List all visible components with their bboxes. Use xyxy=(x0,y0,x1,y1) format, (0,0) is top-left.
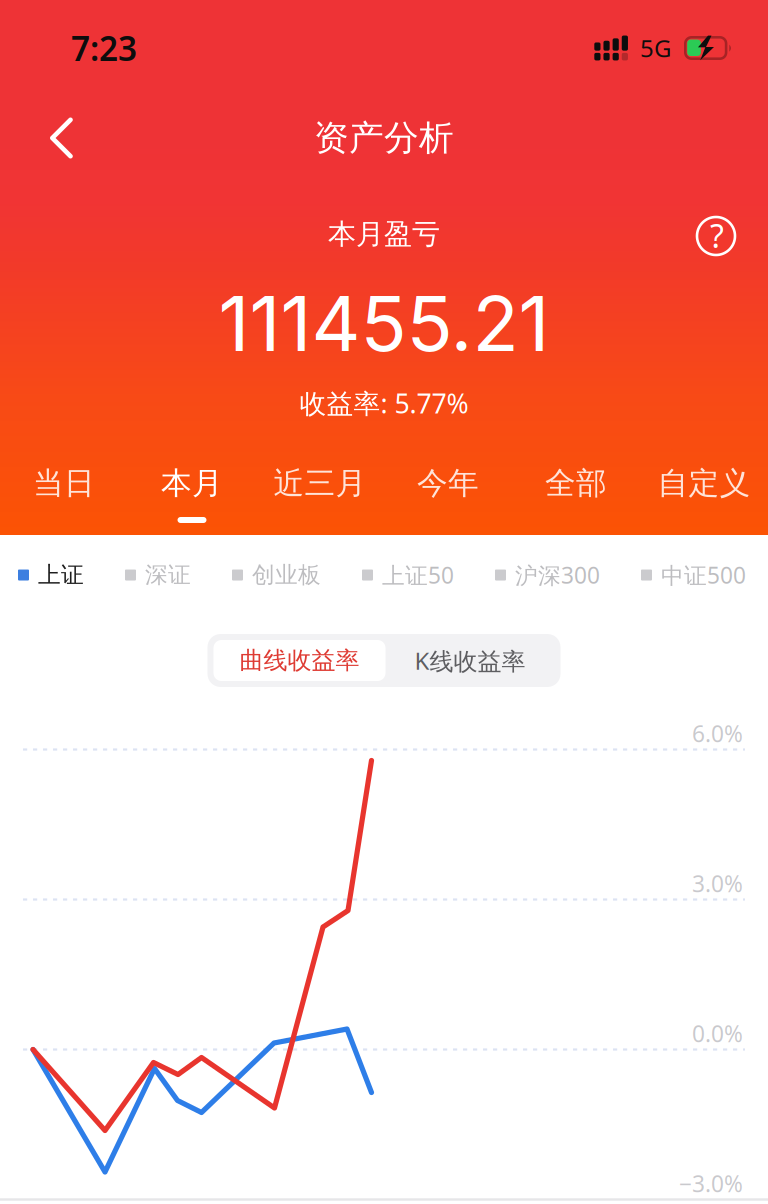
button[interactable]: 当日 xyxy=(0,464,128,523)
button[interactable]: 近三月 xyxy=(256,464,384,523)
button[interactable]: 全部 xyxy=(512,464,640,523)
staticText: −3.0% xyxy=(679,1168,743,1199)
staticText: 当日 xyxy=(33,464,95,502)
button[interactable]: 创业板 xyxy=(232,561,321,589)
staticText: 自定义 xyxy=(657,464,750,502)
staticText: 近三月 xyxy=(273,464,366,502)
staticText: 资产分析 xyxy=(314,117,454,159)
staticText: 5G xyxy=(640,32,671,64)
staticText: 全部 xyxy=(545,464,607,502)
button[interactable]: K线收益率 xyxy=(385,640,554,681)
button[interactable]: 沪深300 xyxy=(495,560,600,590)
button[interactable]: 深证 xyxy=(125,561,191,589)
staticText: 7:23 xyxy=(71,26,137,70)
button[interactable]: 上证50 xyxy=(362,560,454,590)
staticText: 曲线收益率 xyxy=(239,646,359,675)
staticText: 上证 xyxy=(38,561,84,589)
button[interactable]: Help xyxy=(697,217,735,255)
staticText: 上证50 xyxy=(382,560,454,590)
staticText: K线收益率 xyxy=(414,644,525,676)
staticText: 今年 xyxy=(417,464,479,502)
button[interactable]: 曲线收益率 xyxy=(213,640,385,681)
button[interactable]: Back xyxy=(0,103,100,172)
staticText: 收益率: 5.77% xyxy=(299,385,468,421)
staticText: 3.0% xyxy=(692,868,743,899)
staticText: 中证500 xyxy=(661,560,746,590)
staticText: 沪深300 xyxy=(515,560,600,590)
staticText: 本月盈亏 xyxy=(328,217,440,251)
staticText: 深证 xyxy=(145,561,191,589)
staticText: 创业板 xyxy=(252,561,321,589)
staticText: 6.0% xyxy=(692,718,743,749)
button[interactable]: 自定义 xyxy=(640,464,768,523)
button[interactable]: 本月 xyxy=(128,464,256,523)
staticText: 0.0% xyxy=(692,1018,743,1049)
button[interactable]: 今年 xyxy=(384,464,512,523)
button[interactable]: 上证 xyxy=(18,561,84,589)
staticText: 本月 xyxy=(161,464,223,502)
staticText: 111455.21 xyxy=(218,277,549,369)
button[interactable]: 中证500 xyxy=(641,560,746,590)
staticText: ? xyxy=(710,214,724,257)
